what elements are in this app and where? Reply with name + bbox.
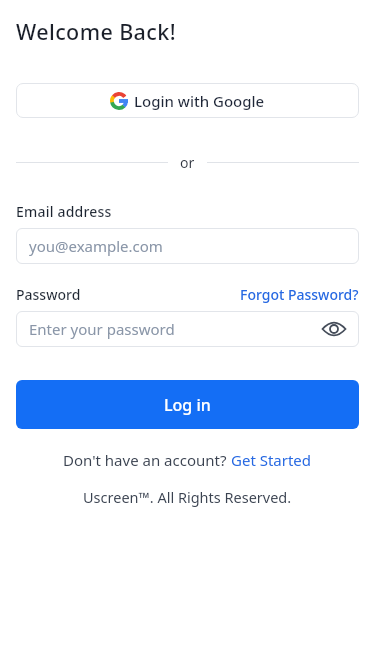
button[interactable]: Login with Google [16, 83, 359, 118]
staticText: Email address [16, 202, 112, 221]
staticText: Enter your password [29, 319, 175, 339]
staticText: Don't have an account? [63, 450, 231, 470]
button[interactable]: Forgot Password? [240, 285, 359, 304]
staticText: Get Started [231, 450, 312, 470]
button[interactable]: Get Started [231, 450, 312, 470]
staticText: Welcome Back! [16, 17, 176, 46]
staticText: you@example.com [29, 236, 163, 256]
staticText: Password [16, 285, 81, 304]
staticText: Uscreen™. All Rights Reserved. [83, 487, 292, 507]
staticText: or [180, 153, 195, 172]
button[interactable]: Log in [16, 380, 359, 429]
staticText: Login with Google [134, 91, 265, 111]
staticText: Forgot Password? [240, 285, 359, 304]
staticText: Log in [164, 394, 211, 416]
